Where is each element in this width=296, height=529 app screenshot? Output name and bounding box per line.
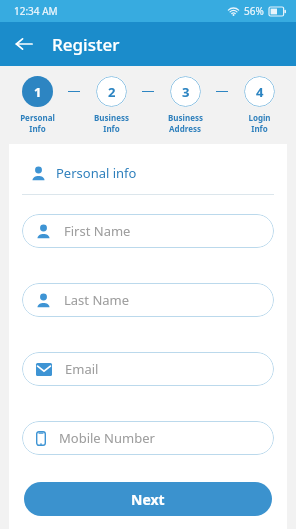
button[interactable]: Back xyxy=(6,26,42,62)
staticText: Register xyxy=(52,33,120,56)
staticText: 2 xyxy=(108,83,116,101)
button[interactable]: First Name xyxy=(22,214,274,248)
staticText: Personal info xyxy=(56,164,137,182)
staticText: Address xyxy=(169,123,201,134)
button[interactable]: 4 xyxy=(228,76,290,134)
button[interactable]: Last Name xyxy=(22,283,274,317)
button[interactable]: 1 xyxy=(6,76,68,134)
staticText: Business xyxy=(168,112,203,123)
button[interactable]: 3 xyxy=(154,76,216,134)
staticText: Email xyxy=(65,360,99,378)
staticText: Mobile Number xyxy=(59,429,155,447)
staticText: 4 xyxy=(256,83,264,101)
button[interactable]: Mobile Number xyxy=(22,421,274,455)
staticText: Info xyxy=(103,123,120,134)
staticText: First Name xyxy=(64,222,131,240)
staticText: Next xyxy=(131,490,165,509)
staticText: Personal xyxy=(20,112,55,123)
staticText: 12:34 AM xyxy=(14,4,58,18)
staticText: 3 xyxy=(182,83,190,101)
staticText: 56% xyxy=(244,4,264,18)
staticText: Business xyxy=(94,112,129,123)
button[interactable]: Next xyxy=(24,482,272,516)
staticText: 1 xyxy=(34,83,42,101)
button[interactable]: Email xyxy=(22,352,274,386)
staticText: Info xyxy=(251,123,268,134)
staticText: Info xyxy=(29,123,46,134)
button[interactable]: 2 xyxy=(80,76,142,134)
staticText: Last Name xyxy=(64,291,130,309)
staticText: Login xyxy=(248,112,271,123)
